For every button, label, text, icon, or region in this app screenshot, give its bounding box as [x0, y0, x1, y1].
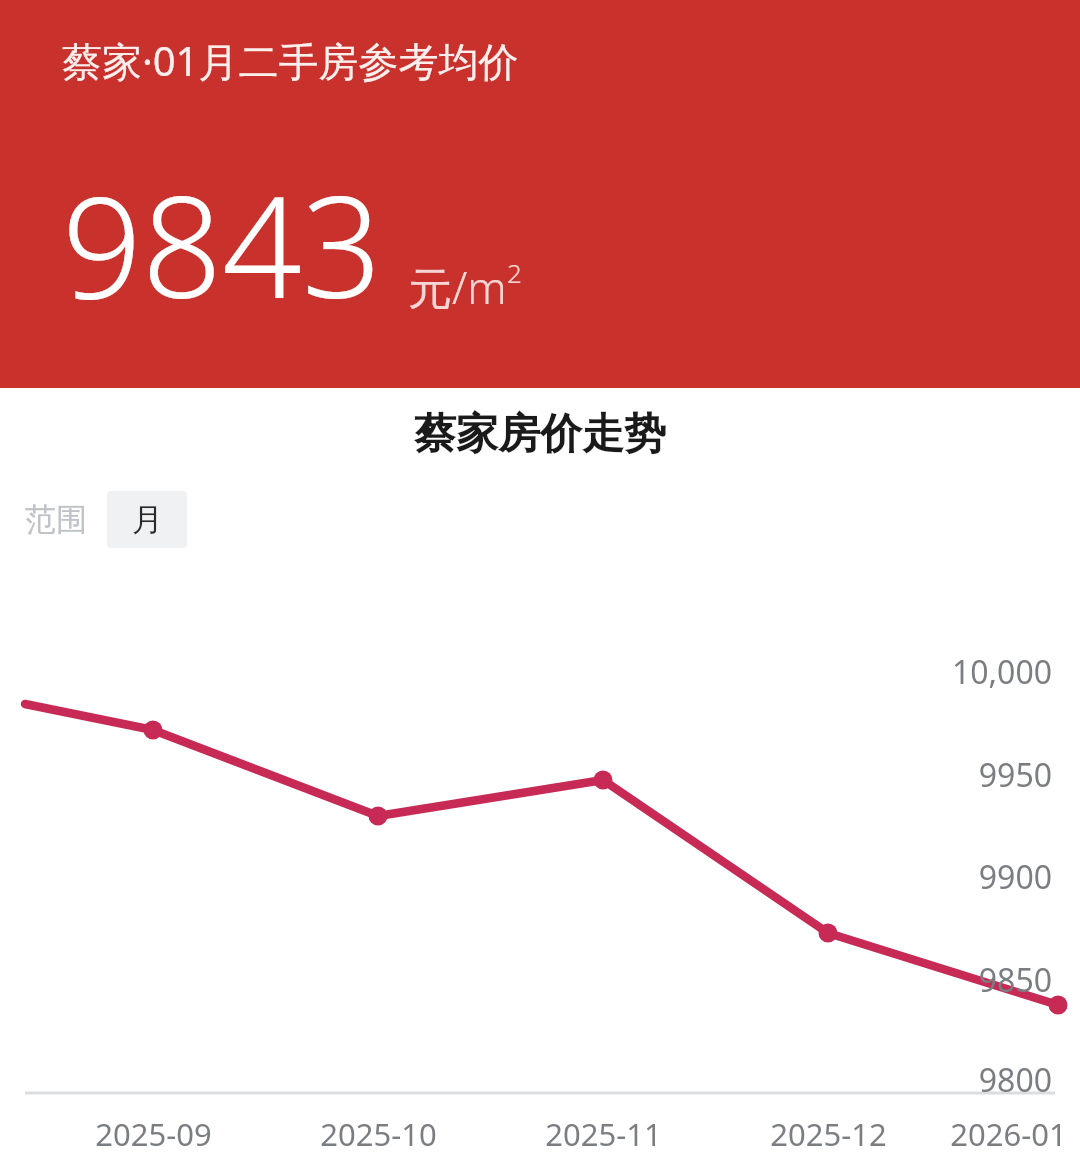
staticText: 蔡家房价走势	[414, 408, 666, 461]
staticText: 2025-09	[95, 1113, 212, 1155]
staticText: 月	[132, 500, 163, 539]
staticText: 2	[507, 255, 522, 290]
staticText: 2026-01	[950, 1113, 1067, 1155]
staticText: 9900	[978, 855, 1052, 899]
button[interactable]: 月	[107, 491, 187, 548]
staticText: 2025-12	[770, 1113, 887, 1155]
staticText: 9950	[978, 753, 1052, 797]
staticText: 2025-11	[545, 1113, 662, 1155]
staticText: 9850	[978, 958, 1052, 1002]
staticText: 9800	[978, 1058, 1052, 1102]
staticText: 2025-10	[320, 1113, 437, 1155]
staticText: 蔡家·01月二手房参考均价	[62, 33, 519, 88]
staticText: 范围	[25, 500, 87, 539]
staticText: 元/m	[408, 257, 507, 317]
staticText: 9843	[62, 148, 382, 339]
staticText: 10,000	[951, 650, 1052, 694]
